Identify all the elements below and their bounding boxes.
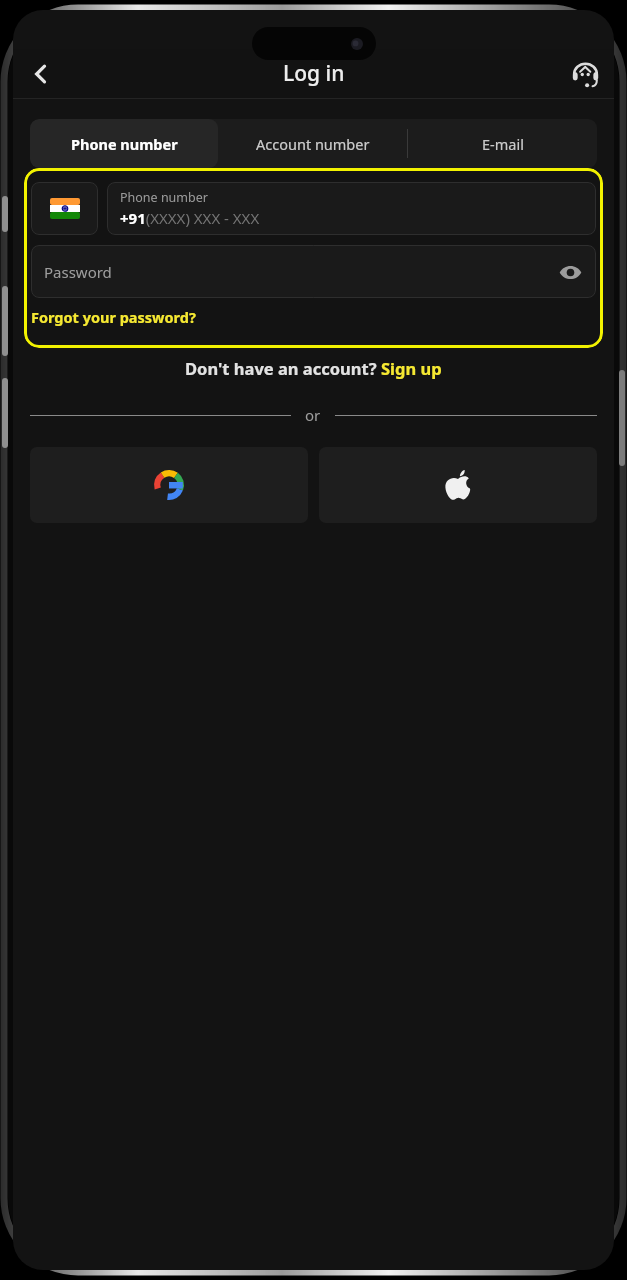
button[interactable]: Account number xyxy=(218,119,407,168)
staticText: Phone number xyxy=(71,134,178,154)
staticText: Sign up xyxy=(381,357,442,379)
button[interactable]: Phone number xyxy=(107,182,596,235)
button[interactable]: Back xyxy=(19,52,63,96)
staticText: Password xyxy=(44,262,112,282)
staticText: Don't have an account? xyxy=(185,357,381,379)
button[interactable]: Customer support xyxy=(564,53,606,95)
staticText: Account number xyxy=(256,134,370,154)
button[interactable]: E-mail xyxy=(408,119,597,168)
button[interactable]: Password xyxy=(31,245,596,298)
staticText: Phone number xyxy=(120,189,208,206)
staticText: Log in xyxy=(283,59,345,88)
button[interactable]: Select country code xyxy=(31,182,98,235)
button[interactable]: Phone number xyxy=(30,119,218,168)
button[interactable]: Log in xyxy=(31,347,596,348)
staticText: E-mail xyxy=(482,134,524,154)
button[interactable]: Show password xyxy=(552,254,588,290)
staticText: +91(XXXX) XXX - XXX xyxy=(120,208,260,228)
button[interactable]: Forgot your password? xyxy=(31,305,196,329)
button[interactable]: Sign in with Google xyxy=(30,447,308,523)
button[interactable]: Sign up xyxy=(381,357,442,379)
staticText: Forgot your password? xyxy=(31,307,196,327)
staticText: or xyxy=(305,405,321,425)
button[interactable]: Sign in with Apple xyxy=(319,447,597,523)
